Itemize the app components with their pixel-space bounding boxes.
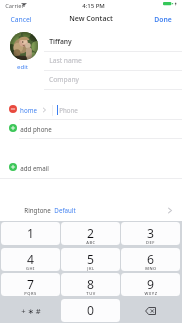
button[interactable]: edit (15, 63, 30, 71)
staticText: 9 (147, 276, 154, 293)
button[interactable]: 4 (1, 248, 60, 271)
staticText: Company (49, 75, 79, 84)
staticText: Tiffany (49, 37, 72, 46)
staticText: Last name (49, 56, 82, 65)
button[interactable]: add email (0, 159, 182, 177)
staticText: 1 (27, 225, 34, 242)
staticText: WXYZ (144, 291, 158, 296)
staticText: 4:15 PM (82, 2, 105, 10)
staticText: 6 (147, 251, 154, 268)
button[interactable]: Company (44, 70, 182, 89)
staticText: 8 (87, 276, 94, 293)
staticText: edit (17, 63, 28, 71)
staticText: add email (20, 164, 49, 172)
staticText: 0 (87, 302, 94, 319)
staticText: New Contact (69, 14, 113, 24)
staticText: Default (54, 206, 76, 214)
button[interactable]: Done (148, 10, 178, 28)
staticText: Cancel (10, 15, 32, 24)
button[interactable]: Delete (121, 299, 180, 322)
staticText: Done (154, 15, 172, 24)
staticText: 3 (147, 225, 154, 242)
button[interactable]: 3 (121, 222, 180, 245)
staticText: JKL (87, 266, 95, 271)
staticText: Ringtone (24, 206, 51, 214)
staticText: MNO (145, 266, 157, 271)
button[interactable]: add phone (0, 120, 182, 138)
button[interactable]: 8 (61, 273, 120, 296)
staticText: 4 (27, 251, 34, 268)
staticText: + ∗ # (21, 306, 41, 316)
button[interactable]: 9 (121, 273, 180, 296)
button[interactable]: 2 (61, 222, 120, 245)
staticText: 2 (87, 225, 94, 242)
button[interactable]: 1 (1, 222, 60, 245)
button[interactable]: 7 (1, 273, 60, 296)
staticText: home (20, 106, 37, 114)
button[interactable]: Contact photo (10, 32, 38, 60)
staticText: ABC (86, 240, 96, 245)
button[interactable]: 0 (61, 299, 120, 322)
staticText: Carrier (5, 2, 24, 10)
button[interactable]: Cancel (4, 10, 38, 28)
button[interactable]: Tiffany (44, 32, 182, 51)
staticText: GHI (26, 266, 35, 271)
button[interactable]: 6 (121, 248, 180, 271)
staticText: PQRS (24, 291, 37, 296)
staticText: TUV (86, 291, 96, 296)
button[interactable]: + ∗ # (1, 299, 60, 322)
staticText: 7 (27, 276, 34, 293)
staticText: 5 (87, 251, 94, 268)
button[interactable]: Ringtone (0, 201, 182, 219)
button[interactable]: Remove phone (0, 101, 182, 119)
staticText: Phone (59, 106, 78, 114)
button[interactable]: Last name (44, 51, 182, 70)
staticText: add phone (20, 125, 52, 133)
other: Remove phone (9, 105, 17, 113)
staticText: DEF (146, 240, 155, 245)
button[interactable]: 5 (61, 248, 120, 271)
